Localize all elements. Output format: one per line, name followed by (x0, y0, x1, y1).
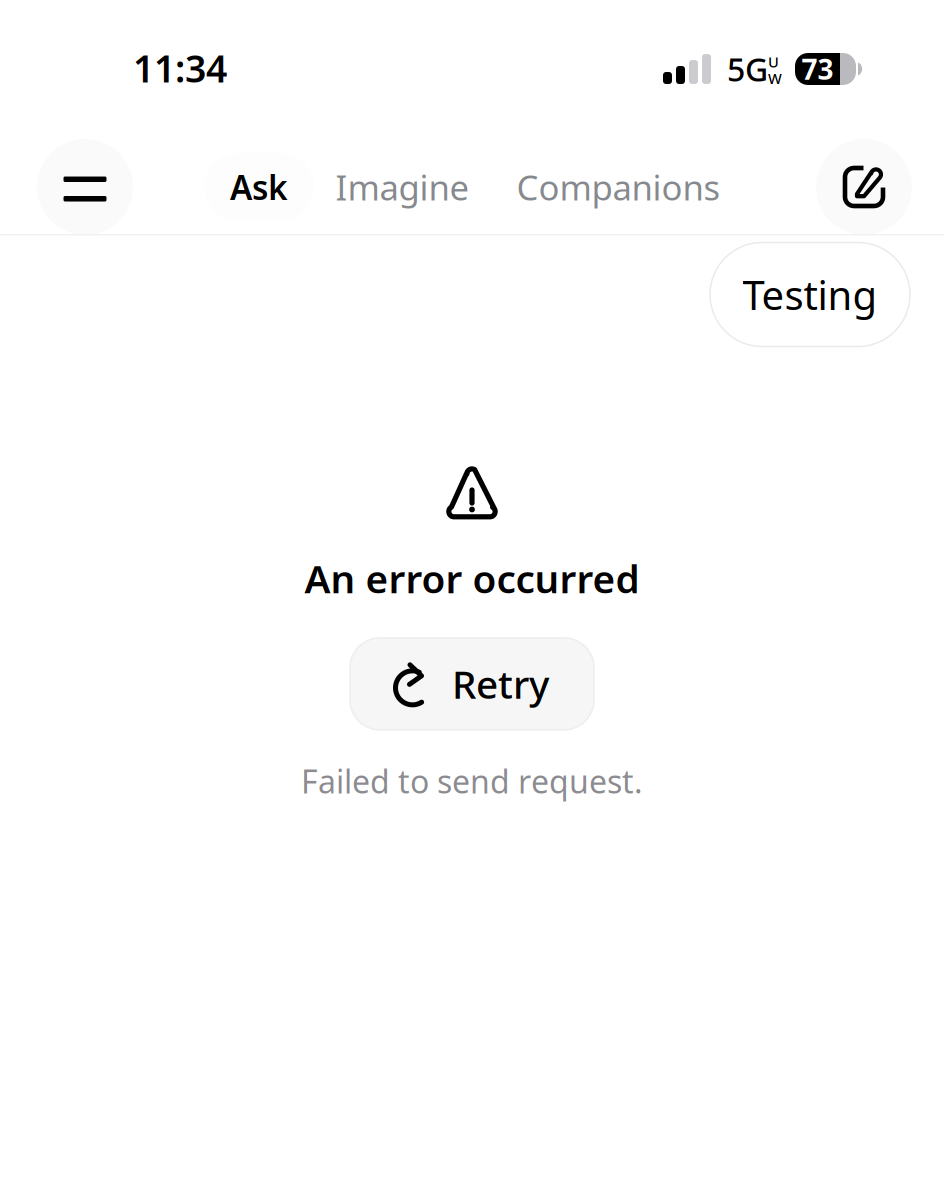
staticText: W (768, 68, 782, 88)
staticText: 5G (727, 48, 768, 90)
button[interactable]: Retry (350, 638, 594, 730)
staticText: Companions (516, 164, 720, 210)
button[interactable]: Menu (37, 139, 133, 235)
staticText: Testing (742, 268, 877, 321)
button[interactable]: New chat (816, 139, 912, 235)
staticText: An error occurred (304, 552, 639, 604)
staticText: U (768, 52, 779, 71)
staticText: Failed to send request. (301, 760, 643, 802)
button[interactable]: Ask (204, 153, 314, 221)
staticText: Retry (452, 658, 549, 709)
staticText: Ask (230, 165, 288, 209)
button[interactable]: Imagine (314, 153, 491, 221)
button[interactable]: Companions (491, 153, 746, 221)
staticText: 11:34 (133, 43, 227, 93)
staticText: 73 (801, 50, 833, 88)
staticText: Imagine (335, 164, 469, 210)
